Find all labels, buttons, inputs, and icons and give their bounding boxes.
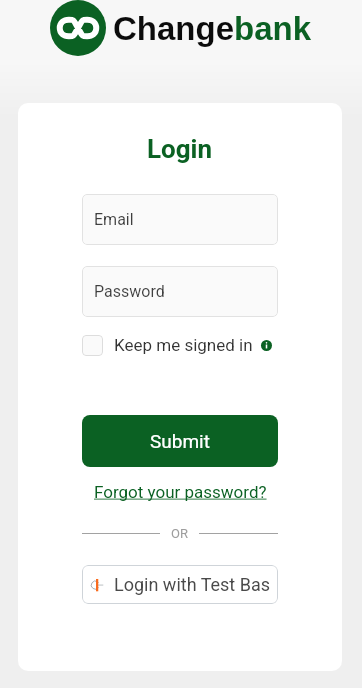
- staticText: Email: [94, 210, 134, 229]
- button[interactable]: Login with Test Bas: [82, 565, 278, 604]
- staticText: Changebank: [113, 10, 312, 47]
- staticText: Keep me signed in: [114, 335, 253, 355]
- staticText: Submit: [150, 430, 210, 452]
- staticText: Forgot your password?: [94, 482, 267, 502]
- button[interactable]: Keep me signed in: [82, 334, 278, 356]
- staticText: Login with Test Bas: [114, 574, 271, 595]
- button[interactable]: Email: [82, 194, 278, 245]
- button[interactable]: More information: [261, 340, 272, 351]
- staticText: OR: [171, 526, 188, 540]
- button[interactable]: Submit: [82, 415, 278, 467]
- staticText: Login: [147, 134, 213, 164]
- button[interactable]: Password: [82, 266, 278, 317]
- staticText: Password: [94, 282, 165, 301]
- button[interactable]: Forgot your password?: [94, 482, 267, 502]
- button[interactable]: Changebank home: [50, 0, 312, 56]
